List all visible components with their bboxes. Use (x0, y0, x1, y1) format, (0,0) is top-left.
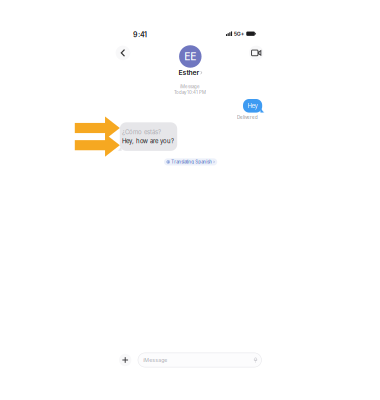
staticText: Today 10:41 PM (174, 90, 206, 95)
button[interactable]: Translating Spanish (164, 158, 217, 165)
staticText: Delivered (237, 115, 258, 120)
button[interactable]: Back (116, 46, 130, 60)
button[interactable]: FaceTime video (249, 46, 263, 60)
button[interactable]: iMessage (138, 353, 261, 367)
staticText: Esther (178, 68, 199, 77)
staticText: 9:41 (133, 30, 147, 39)
staticText: iMessage (180, 84, 200, 89)
staticText: iMessage (143, 357, 167, 363)
staticText: Translating Spanish (171, 159, 212, 164)
staticText: Hey (248, 102, 258, 109)
staticText: 5G+ (234, 30, 245, 37)
staticText: EE (184, 50, 196, 63)
staticText: ¿Cómo estás? (122, 128, 161, 136)
staticText: Hey, how are you? (122, 137, 174, 145)
button[interactable]: Add attachment (119, 354, 131, 366)
button[interactable]: EE (178, 45, 202, 77)
